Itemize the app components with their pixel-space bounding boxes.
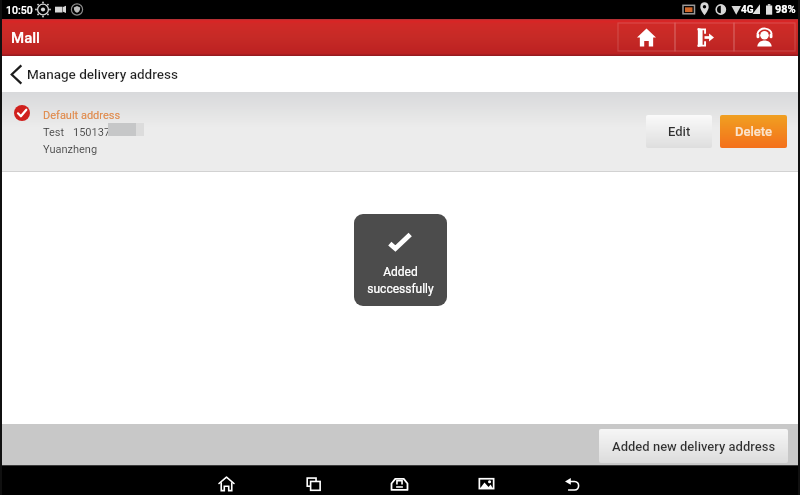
staticText: Delete xyxy=(735,124,773,139)
staticText: Manage delivery address xyxy=(27,66,179,82)
button[interactable]: Log out xyxy=(675,23,734,51)
button[interactable]: VCI xyxy=(377,465,421,495)
button[interactable]: Home xyxy=(204,465,248,495)
button[interactable]: Back xyxy=(10,56,179,92)
staticText: 150137 xyxy=(73,126,111,139)
button[interactable]: Recents xyxy=(291,465,335,495)
button[interactable]: Screenshot xyxy=(464,465,508,495)
staticText: 4G xyxy=(741,4,754,16)
button[interactable]: Home xyxy=(618,23,675,51)
button[interactable]: Default address xyxy=(0,92,800,171)
staticText: 10:50 xyxy=(6,4,33,16)
staticText: Default address xyxy=(43,109,121,122)
staticText: Edit xyxy=(668,124,691,139)
button[interactable]: Edit xyxy=(646,115,712,148)
button[interactable]: Back xyxy=(550,465,594,495)
staticText: 98% xyxy=(775,3,796,16)
other: Back xyxy=(10,65,22,84)
button[interactable]: Added new delivery address xyxy=(599,429,788,463)
staticText: Mall xyxy=(11,29,40,47)
staticText: Added successfully xyxy=(354,265,447,296)
button[interactable]: Customer service xyxy=(734,23,795,51)
button[interactable]: Delete xyxy=(720,115,787,148)
staticText: Added new delivery address xyxy=(612,439,776,454)
staticText: Yuanzheng xyxy=(43,143,98,156)
staticText: Test xyxy=(43,126,65,139)
